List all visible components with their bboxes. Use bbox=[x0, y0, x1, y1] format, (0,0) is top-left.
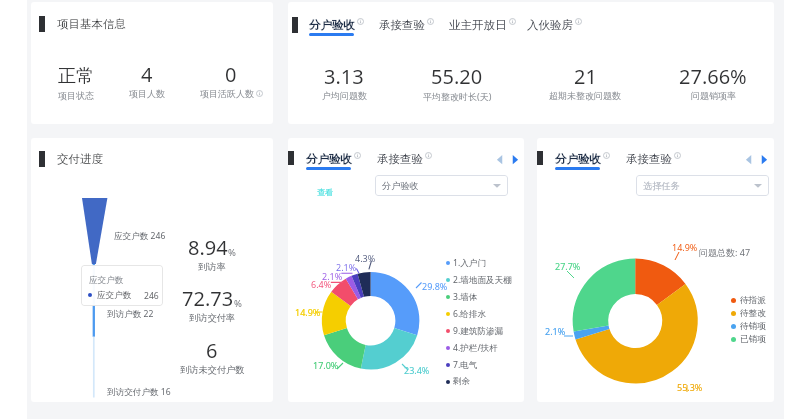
staticText: 2.1% bbox=[336, 261, 357, 273]
staticText: 项目活跃人数 bbox=[200, 88, 254, 99]
button[interactable]: 入伙验房 bbox=[527, 18, 582, 32]
staticText: 29.8% bbox=[422, 280, 448, 292]
staticText: 入伙验房 bbox=[527, 18, 573, 32]
staticText: 到访率 bbox=[198, 261, 226, 273]
staticText: 4.3% bbox=[355, 252, 376, 264]
staticText: 业主开放日 bbox=[449, 18, 507, 32]
staticText: 查看 bbox=[317, 187, 333, 197]
button[interactable]: 分户验收 bbox=[306, 152, 361, 170]
staticText: 应交户数 246 bbox=[114, 230, 166, 242]
staticText: 问题销项率 bbox=[691, 90, 736, 101]
staticText: 交付进度 bbox=[57, 152, 103, 166]
staticText: 72.73 bbox=[182, 285, 234, 312]
staticText: 分户验收 bbox=[309, 18, 355, 32]
staticText: 7.电气 bbox=[453, 359, 478, 371]
staticText: 246 bbox=[144, 290, 159, 302]
button[interactable]: 分户验收 bbox=[309, 18, 364, 36]
staticText: 项目人数 bbox=[129, 88, 165, 99]
staticText: 6 bbox=[206, 337, 218, 364]
button[interactable]: Previous bbox=[742, 151, 756, 165]
staticText: 23.4% bbox=[404, 364, 430, 376]
staticText: 选择任务 bbox=[643, 180, 680, 192]
staticText: 承接查验 bbox=[379, 18, 425, 32]
staticText: 55.3% bbox=[677, 381, 703, 393]
staticText: 待整改 bbox=[740, 308, 766, 319]
staticText: 3.墙体 bbox=[453, 291, 478, 303]
staticText: 项目状态 bbox=[58, 90, 94, 101]
button[interactable]: 分户验收 bbox=[375, 175, 508, 196]
staticText: 2.墙地面及天棚 bbox=[453, 274, 512, 286]
staticText: 超期未整改问题数 bbox=[549, 90, 621, 101]
staticText: 6.给排水 bbox=[453, 308, 487, 320]
button[interactable]: 业主开放日 bbox=[449, 18, 516, 32]
button[interactable]: Next bbox=[757, 151, 771, 165]
staticText: 27.7% bbox=[555, 260, 581, 272]
button[interactable]: 承接查验 bbox=[626, 152, 681, 166]
staticText: 3.13 bbox=[324, 63, 364, 90]
staticText: 21 bbox=[574, 63, 597, 90]
staticText: 问题总数: 47 bbox=[699, 246, 751, 258]
staticText: 户均问题数 bbox=[322, 90, 367, 101]
staticText: 14.9% bbox=[295, 306, 321, 318]
staticText: 平均整改时长(天) bbox=[423, 90, 492, 102]
button[interactable]: 分户验收 bbox=[555, 152, 610, 170]
staticText: 已销项 bbox=[740, 334, 766, 345]
staticText: 剩余 bbox=[453, 376, 471, 387]
staticText: 分户验收 bbox=[555, 152, 601, 166]
staticText: % bbox=[234, 297, 242, 310]
staticText: 55.20 bbox=[431, 63, 483, 90]
button[interactable]: 分户验收 bbox=[288, 138, 524, 402]
staticText: 9.建筑防渗漏 bbox=[453, 325, 504, 337]
button[interactable]: 交付进度 bbox=[31, 138, 273, 402]
staticText: 分户验收 bbox=[382, 180, 419, 192]
button[interactable]: 项目基本信息 bbox=[31, 2, 273, 124]
staticText: 17.0% bbox=[313, 359, 339, 371]
staticText: 到访交付率 bbox=[189, 312, 235, 324]
button[interactable]: 分户验收 bbox=[288, 2, 774, 124]
staticText: 到访交付户数 16 bbox=[107, 386, 171, 398]
staticText: 8.94 bbox=[188, 234, 228, 261]
staticText: 承接查验 bbox=[626, 152, 672, 166]
button[interactable]: 选择任务 bbox=[636, 175, 769, 196]
button[interactable]: 承接查验 bbox=[377, 152, 432, 166]
staticText: 到访未交付户数 bbox=[180, 364, 245, 376]
staticText: 待指派 bbox=[740, 295, 766, 306]
staticText: 1.入户门 bbox=[453, 257, 487, 269]
staticText: 承接查验 bbox=[377, 152, 423, 166]
button[interactable]: Next bbox=[508, 151, 522, 165]
button[interactable]: 承接查验 bbox=[379, 18, 434, 32]
staticText: 项目基本信息 bbox=[57, 17, 126, 31]
staticText: 14.9% bbox=[672, 241, 698, 253]
staticText: 4.护栏/扶杆 bbox=[453, 342, 498, 354]
staticText: 4 bbox=[141, 61, 153, 88]
staticText: 6.4% bbox=[311, 278, 332, 290]
staticText: 0 bbox=[225, 61, 237, 88]
staticText: 到访户数 22 bbox=[107, 308, 154, 320]
staticText: 2.1% bbox=[545, 325, 566, 337]
staticText: 应交户数 bbox=[97, 290, 132, 301]
button[interactable]: Previous bbox=[493, 151, 507, 165]
staticText: 27.66% bbox=[679, 63, 747, 90]
staticText: 待销项 bbox=[740, 321, 766, 332]
staticText: 分户验收 bbox=[306, 152, 352, 166]
staticText: % bbox=[228, 246, 236, 259]
staticText: 2.1% bbox=[322, 270, 343, 282]
staticText: 正常 bbox=[58, 65, 94, 88]
staticText: 应交户数 bbox=[89, 275, 124, 286]
button[interactable]: 分户验收 bbox=[537, 138, 774, 402]
